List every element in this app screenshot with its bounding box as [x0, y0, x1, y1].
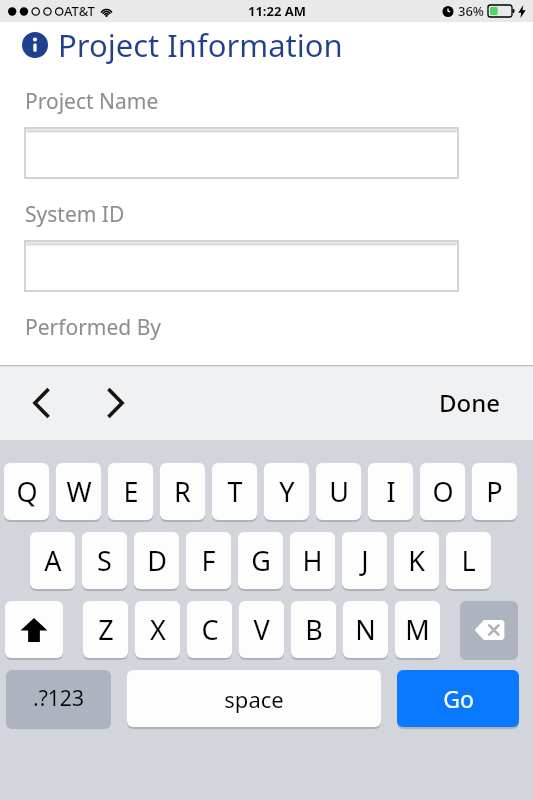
button[interactable]: Done [431, 376, 509, 429]
staticText: I [386, 473, 396, 510]
staticText: System ID [25, 200, 125, 229]
staticText: .?123 [33, 684, 84, 713]
other: Information [22, 32, 48, 58]
button[interactable]: R [160, 463, 205, 520]
button[interactable]: P [472, 463, 517, 520]
staticText: F [201, 542, 216, 579]
button[interactable]: T [212, 463, 257, 520]
button[interactable]: F [186, 532, 231, 589]
button[interactable]: Previous field [18, 379, 66, 427]
button[interactable]: U [316, 463, 361, 520]
staticText: T [227, 473, 243, 510]
button[interactable]: H [290, 532, 335, 589]
staticText: M [405, 611, 430, 648]
staticText: G [251, 542, 271, 579]
button[interactable]: G [238, 532, 283, 589]
staticText: space [224, 684, 284, 714]
staticText: A [44, 542, 62, 579]
staticText: B [305, 611, 323, 648]
staticText: S [97, 542, 112, 579]
staticText: Go [443, 683, 474, 714]
button[interactable]: Go [397, 670, 519, 727]
button[interactable]: C [187, 601, 232, 658]
staticText: D [147, 542, 167, 579]
staticText: L [461, 542, 476, 579]
button[interactable]: Q [4, 463, 49, 520]
staticText: E [123, 473, 139, 510]
button[interactable]: V [239, 601, 284, 658]
button[interactable] [25, 128, 458, 178]
staticText: W [66, 473, 92, 510]
staticText: K [408, 542, 425, 579]
button[interactable]: E [108, 463, 153, 520]
staticText: 36% [458, 2, 484, 20]
button[interactable]: Backspace [460, 601, 518, 658]
staticText: N [355, 611, 376, 648]
button[interactable]: S [82, 532, 127, 589]
button[interactable]: space [127, 670, 381, 727]
button[interactable]: L [446, 532, 491, 589]
staticText: J [361, 542, 369, 579]
button[interactable]: N [343, 601, 388, 658]
staticText: Performed By [25, 313, 162, 342]
staticText: O [432, 473, 454, 510]
button[interactable]: W [56, 463, 101, 520]
staticText: P [486, 473, 503, 510]
button[interactable]: A [30, 532, 75, 589]
button[interactable]: K [394, 532, 439, 589]
staticText: Done [439, 386, 501, 419]
staticText: Q [16, 473, 38, 510]
button[interactable]: O [420, 463, 465, 520]
staticText: V [253, 611, 270, 648]
button[interactable]: X [135, 601, 180, 658]
staticText: Y [279, 473, 295, 510]
staticText: Z [98, 611, 114, 648]
button[interactable]: I [368, 463, 413, 520]
button[interactable]: M [395, 601, 440, 658]
staticText: H [302, 542, 323, 579]
button[interactable]: .?123 [6, 670, 111, 727]
staticText: Project Information [58, 24, 343, 66]
button[interactable]: J [342, 532, 387, 589]
button[interactable]: Next field [90, 379, 138, 427]
button[interactable]: Z [83, 601, 128, 658]
button[interactable]: Shift [5, 601, 63, 658]
staticText: Project Name [25, 87, 159, 116]
staticText: C [201, 611, 219, 648]
button[interactable] [25, 241, 458, 291]
button[interactable]: D [134, 532, 179, 589]
staticText: U [329, 473, 349, 510]
staticText: X [150, 611, 166, 648]
button[interactable]: B [291, 601, 336, 658]
staticText: 11:22 AM [248, 2, 307, 20]
staticText: R [174, 473, 191, 510]
staticText: AT&T [64, 2, 95, 20]
button[interactable]: Y [264, 463, 309, 520]
